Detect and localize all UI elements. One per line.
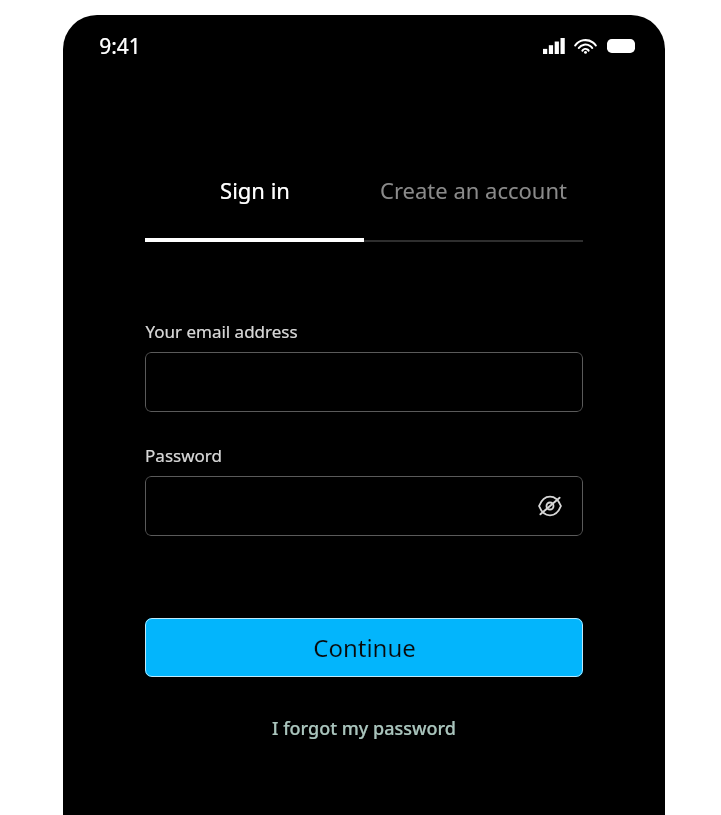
staticText: Create an account	[380, 175, 567, 205]
button[interactable]: Continue	[145, 618, 583, 677]
staticText: Sign in	[220, 175, 290, 205]
staticText: Continue	[313, 631, 416, 664]
button[interactable]: Sign in	[145, 169, 364, 211]
staticText: Password	[145, 444, 222, 467]
button[interactable]: Show password	[145, 476, 583, 536]
staticText: Your email address	[145, 320, 298, 343]
button[interactable]: Show password	[533, 489, 567, 523]
button[interactable]: I forgot my password	[63, 710, 665, 747]
staticText: I forgot my password	[272, 716, 456, 741]
button[interactable]	[145, 352, 583, 412]
button[interactable]: Create an account	[364, 169, 583, 211]
staticText: 9:41	[99, 32, 141, 61]
